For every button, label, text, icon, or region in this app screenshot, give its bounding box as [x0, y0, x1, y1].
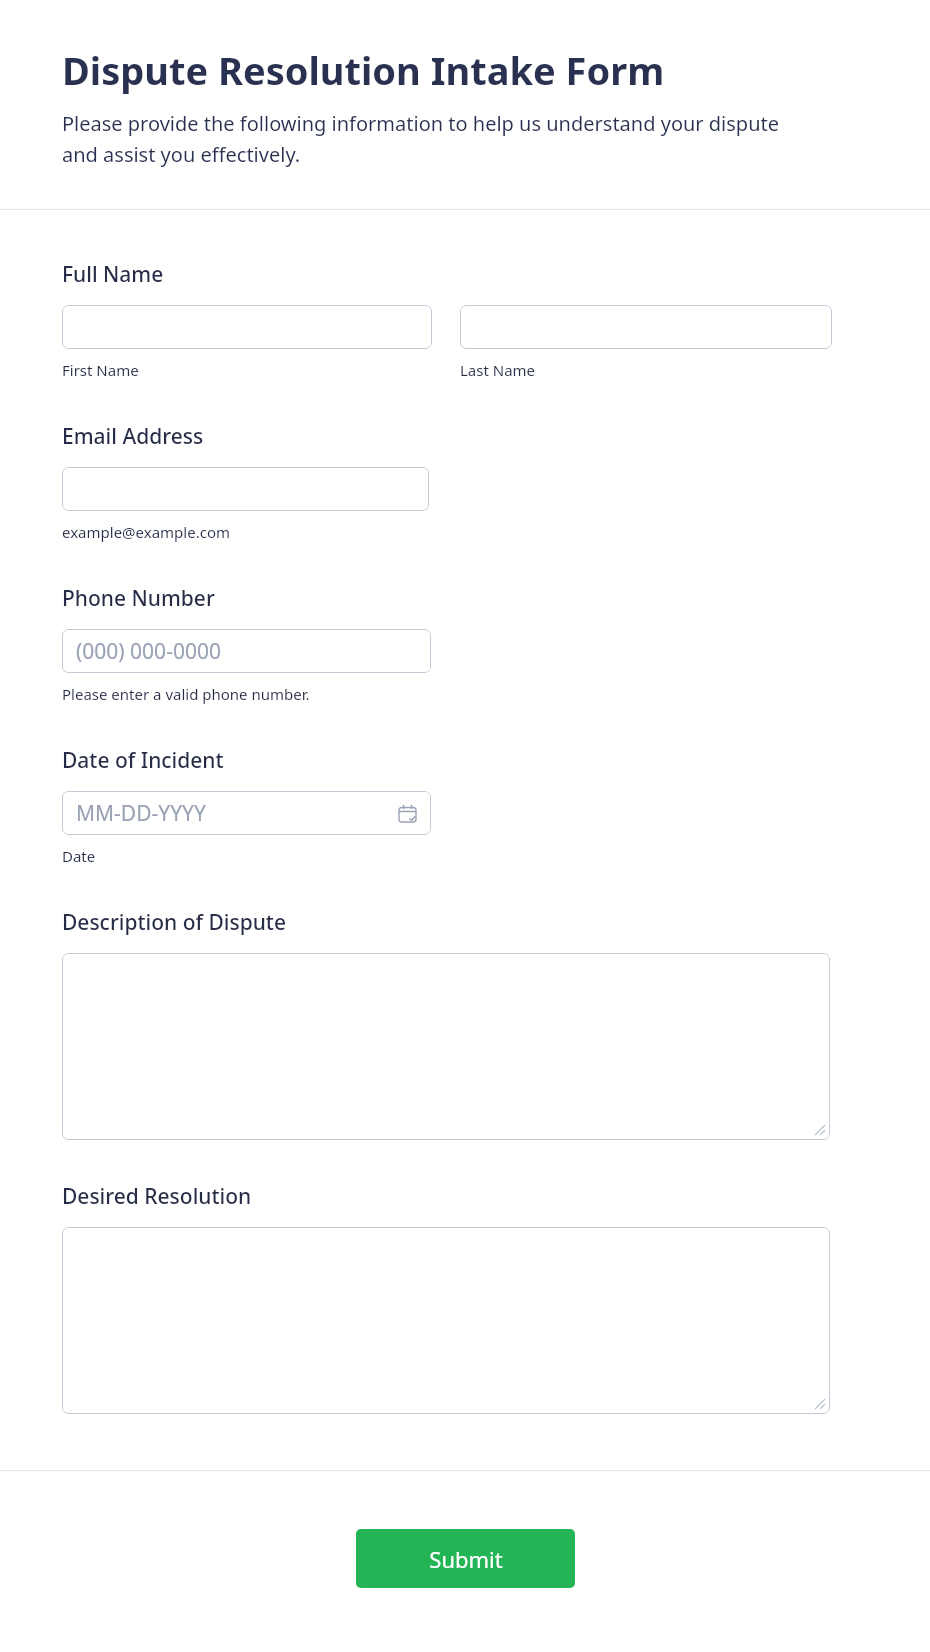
staticText: Last Name: [460, 360, 536, 380]
button[interactable]: Email Address input: [62, 467, 429, 511]
staticText: Date: [62, 846, 96, 866]
staticText: Please provide the following information…: [62, 110, 790, 168]
button[interactable]: Description of Dispute input: [62, 953, 830, 1140]
staticText: Description of Dispute: [62, 908, 286, 937]
staticText: Desired Resolution: [62, 1182, 252, 1211]
button[interactable]: Date of Incident input: [62, 791, 431, 835]
staticText: Please enter a valid phone number.: [62, 684, 310, 704]
staticText: Phone Number: [62, 584, 215, 613]
button[interactable]: First Name input: [62, 305, 432, 349]
button[interactable]: Desired Resolution input: [62, 1227, 830, 1414]
button[interactable]: Last Name input: [460, 305, 832, 349]
button[interactable]: Submit: [356, 1529, 575, 1588]
staticText: MM-DD-YYYY: [76, 799, 206, 828]
staticText: Date of Incident: [62, 746, 224, 775]
staticText: First Name: [62, 360, 139, 380]
staticText: example@example.com: [62, 522, 230, 542]
staticText: Email Address: [62, 422, 204, 451]
staticText: Dispute Resolution Intake Form: [62, 44, 665, 96]
staticText: Full Name: [62, 260, 164, 289]
staticText: (000) 000-0000: [76, 637, 221, 666]
staticText: Submit: [429, 1544, 503, 1574]
button[interactable]: Phone Number input: [62, 629, 431, 673]
